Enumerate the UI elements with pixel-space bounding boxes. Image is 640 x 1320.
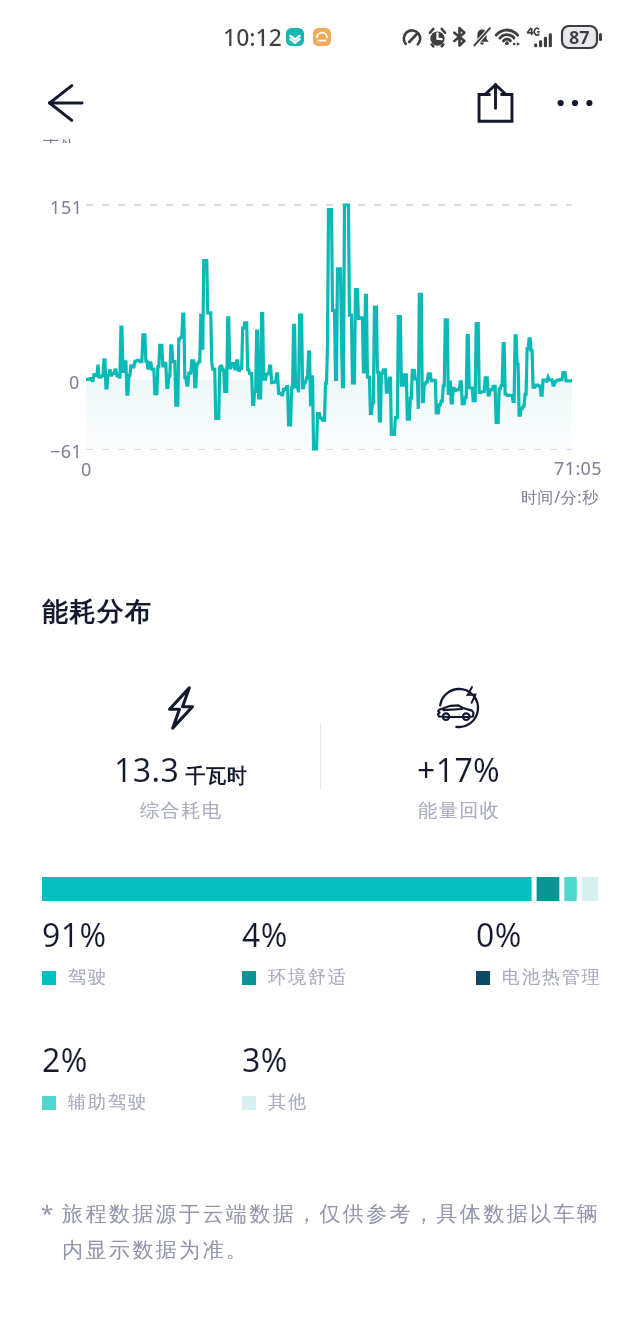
staticText: −61 [50, 439, 83, 464]
staticText: 3% [242, 1038, 288, 1082]
staticText: 其他 [267, 1091, 307, 1114]
staticText: 151 [50, 195, 83, 220]
staticText: 71:05 [554, 456, 603, 481]
button[interactable]: 91% [42, 913, 107, 989]
staticText: 千瓦时 [185, 764, 248, 789]
button[interactable]: 0% [476, 913, 601, 989]
staticText: * [41, 1197, 54, 1227]
staticText: 电池热管理 [501, 966, 601, 989]
button[interactable]: 3% [242, 1038, 307, 1114]
button[interactable]: More options [541, 69, 609, 137]
staticText: 环境舒适 [267, 966, 347, 989]
button[interactable]: 4% [242, 913, 347, 989]
staticText: +17% [417, 748, 501, 792]
button[interactable]: 2% [42, 1038, 147, 1114]
button[interactable]: Share [461, 69, 529, 137]
staticText: 2% [42, 1038, 88, 1082]
button[interactable]: Back [31, 69, 99, 137]
staticText: 驾驶 [67, 966, 107, 989]
staticText: 10:12 [223, 21, 282, 52]
staticText: 87 [569, 25, 590, 49]
staticText: 旅程数据源于云端数据，仅供参考，具体数据以车辆 [62, 1201, 601, 1227]
staticText: 4% [242, 913, 288, 957]
staticText: 时间/分:秒 [521, 486, 599, 508]
staticText: 0 [81, 457, 92, 482]
staticText: 0 [69, 370, 80, 395]
staticText: 能量回收 [418, 799, 501, 823]
staticText: 0% [476, 913, 522, 957]
staticText: 综合耗电 [140, 799, 223, 823]
staticText: 91% [42, 913, 107, 957]
staticText: 13.3 [114, 748, 180, 792]
staticText: 内显示数据为准。 [62, 1237, 250, 1263]
staticText: 千瓦时 [43, 139, 91, 143]
staticText: 能耗分布 [41, 596, 151, 629]
staticText: 辅助驾驶 [67, 1091, 147, 1114]
